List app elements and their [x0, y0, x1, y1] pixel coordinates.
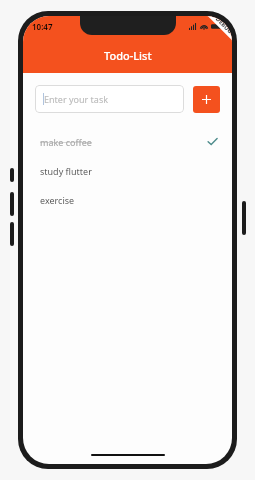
staticText: DEBUG	[214, 16, 232, 35]
staticText: exercise	[40, 194, 75, 206]
button[interactable]: study flutter	[23, 156, 232, 185]
staticText: make coffee	[40, 136, 92, 148]
button[interactable]: Enter your task	[35, 85, 184, 113]
staticText: 10:47	[32, 21, 53, 32]
button[interactable]: Add task	[193, 86, 220, 113]
button[interactable]: exercise	[23, 185, 232, 214]
staticText: Enter your task	[44, 93, 109, 105]
button[interactable]: make coffee	[23, 127, 232, 156]
staticText: study flutter	[40, 165, 92, 177]
staticText: Todo-List	[104, 48, 152, 63]
